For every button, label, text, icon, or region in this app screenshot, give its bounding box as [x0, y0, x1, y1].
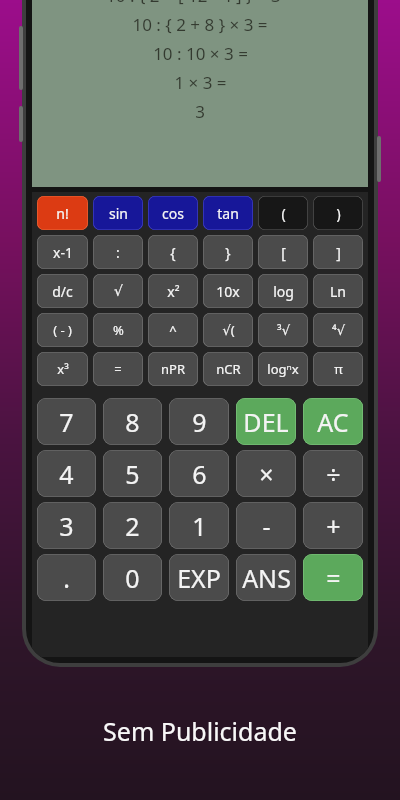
- button[interactable]: AC: [303, 398, 363, 445]
- button[interactable]: logⁿx: [258, 352, 308, 386]
- button[interactable]: x²: [148, 274, 198, 308]
- staticText: 6: [192, 457, 207, 491]
- button[interactable]: √(: [203, 313, 253, 347]
- button[interactable]: -: [236, 502, 296, 549]
- button[interactable]: 7: [37, 398, 96, 445]
- staticText: 1 × 3 =: [174, 71, 227, 94]
- staticText: ): [336, 204, 341, 223]
- staticText: 10 : { 2 + [ 12 - 4 ] } × 3 =: [106, 0, 295, 7]
- button[interactable]: %: [93, 313, 143, 347]
- button[interactable]: π: [313, 352, 363, 386]
- staticText: 10x: [216, 282, 240, 301]
- button[interactable]: ⁴√: [313, 313, 363, 347]
- staticText: ⁴√: [332, 321, 345, 339]
- button[interactable]: =: [303, 554, 363, 601]
- staticText: sin: [109, 204, 128, 223]
- staticText: √: [114, 283, 123, 299]
- button[interactable]: 3: [37, 502, 96, 549]
- staticText: }: [225, 243, 231, 262]
- button[interactable]: 0: [103, 554, 162, 601]
- staticText: =: [114, 360, 122, 378]
- button[interactable]: sin: [93, 196, 143, 230]
- staticText: ]: [336, 243, 341, 262]
- button[interactable]: {: [148, 235, 198, 269]
- staticText: x-1: [53, 243, 73, 262]
- staticText: ÷: [326, 457, 341, 491]
- button[interactable]: [: [258, 235, 308, 269]
- button[interactable]: ]: [313, 235, 363, 269]
- staticText: cos: [162, 204, 184, 223]
- staticText: 4: [59, 457, 74, 491]
- button[interactable]: ): [313, 196, 363, 230]
- button[interactable]: .: [37, 554, 96, 601]
- button[interactable]: ^: [148, 313, 198, 347]
- staticText: %: [113, 321, 124, 339]
- staticText: 9: [192, 405, 207, 439]
- button[interactable]: 9: [169, 398, 229, 445]
- staticText: 5: [125, 457, 140, 491]
- staticText: logⁿx: [267, 360, 299, 378]
- button[interactable]: DEL: [236, 398, 296, 445]
- staticText: tan: [217, 204, 239, 223]
- staticText: nPR: [161, 360, 185, 378]
- staticText: x²: [167, 282, 180, 301]
- staticText: :: [116, 243, 120, 262]
- button[interactable]: 10x: [203, 274, 253, 308]
- staticText: (: [281, 204, 286, 223]
- staticText: d/c: [52, 282, 73, 301]
- button[interactable]: 6: [169, 450, 229, 497]
- button[interactable]: ANS: [236, 554, 296, 601]
- staticText: 1: [192, 509, 207, 543]
- button[interactable]: 1: [169, 502, 229, 549]
- button[interactable]: ÷: [303, 450, 363, 497]
- button[interactable]: (: [258, 196, 308, 230]
- staticText: 3: [195, 100, 205, 123]
- staticText: DEL: [243, 405, 289, 439]
- staticText: 0: [125, 561, 140, 595]
- button[interactable]: n!: [37, 196, 88, 230]
- button[interactable]: nPR: [148, 352, 198, 386]
- staticText: 8: [125, 405, 140, 439]
- staticText: {: [170, 243, 176, 262]
- button[interactable]: EXP: [169, 554, 229, 601]
- staticText: .: [63, 561, 70, 595]
- button[interactable]: ( - ): [37, 313, 88, 347]
- staticText: EXP: [177, 561, 221, 595]
- staticText: log: [273, 282, 294, 301]
- staticText: Sem Publicidade: [103, 714, 297, 748]
- staticText: ×: [259, 457, 274, 491]
- button[interactable]: ³√: [258, 313, 308, 347]
- staticText: 10 : 10 × 3 =: [153, 42, 248, 65]
- button[interactable]: ×: [236, 450, 296, 497]
- button[interactable]: Ln: [313, 274, 363, 308]
- button[interactable]: √: [93, 274, 143, 308]
- button[interactable]: nCR: [203, 352, 253, 386]
- staticText: 3: [59, 509, 74, 543]
- button[interactable]: +: [303, 502, 363, 549]
- button[interactable]: log: [258, 274, 308, 308]
- staticText: ANS: [242, 561, 291, 595]
- staticText: 2: [125, 509, 140, 543]
- staticText: +: [326, 509, 341, 543]
- button[interactable]: x-1: [37, 235, 88, 269]
- button[interactable]: 5: [103, 450, 162, 497]
- button[interactable]: d/c: [37, 274, 88, 308]
- button[interactable]: tan: [203, 196, 253, 230]
- staticText: x³: [57, 360, 69, 378]
- staticText: ^: [169, 321, 177, 339]
- staticText: 7: [59, 405, 74, 439]
- staticText: √(: [222, 321, 235, 339]
- button[interactable]: 4: [37, 450, 96, 497]
- staticText: 10 : { 2 + 8 } × 3 =: [132, 13, 268, 36]
- button[interactable]: x³: [37, 352, 88, 386]
- button[interactable]: =: [93, 352, 143, 386]
- staticText: -: [262, 509, 271, 543]
- staticText: Ln: [330, 282, 346, 301]
- button[interactable]: 2: [103, 502, 162, 549]
- staticText: ³√: [277, 321, 290, 339]
- button[interactable]: cos: [148, 196, 198, 230]
- staticText: [: [281, 243, 286, 262]
- button[interactable]: }: [203, 235, 253, 269]
- button[interactable]: :: [93, 235, 143, 269]
- button[interactable]: 8: [103, 398, 162, 445]
